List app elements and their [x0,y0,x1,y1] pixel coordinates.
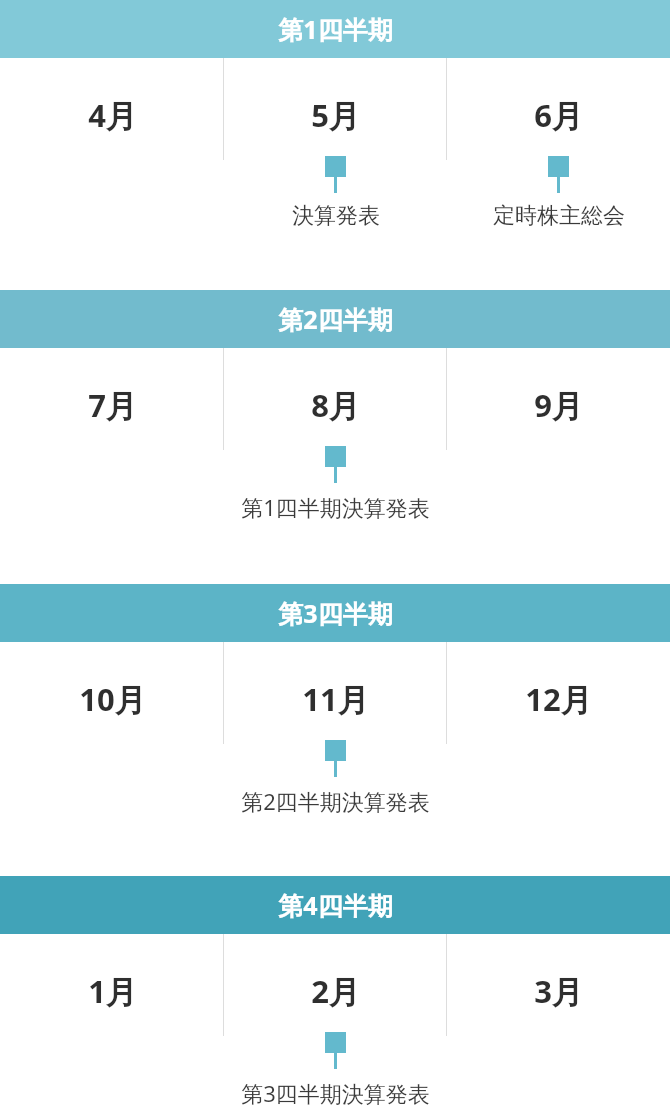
button[interactable]: 7月 [0,348,224,426]
button[interactable]: 1月 [0,934,224,1012]
staticText: 6月 [534,94,583,136]
button[interactable]: 第1四半期 [0,0,670,58]
button[interactable]: 第2四半期 [0,290,670,348]
button[interactable]: 第3四半期 [0,584,670,642]
staticText: 4月 [88,94,137,136]
button[interactable]: 4月 [0,58,224,136]
staticText: 第1四半期 [278,12,393,46]
staticText: 第3四半期決算発表 [241,1078,430,1108]
staticText: 第2四半期決算発表 [241,786,430,816]
staticText: 1月 [88,970,137,1012]
staticText: 9月 [534,384,583,426]
button[interactable]: 3月 [447,934,670,1012]
staticText: 7月 [88,384,137,426]
staticText: 10月 [79,678,146,720]
button[interactable]: 2月 [224,934,447,1108]
staticText: 第3四半期 [278,596,393,630]
staticText: 第4四半期 [278,888,393,922]
button[interactable]: 10月 [0,642,224,720]
staticText: 決算発表 [292,202,380,230]
staticText: 12月 [525,678,592,720]
staticText: 5月 [311,94,360,136]
button[interactable]: 8月 [224,348,447,522]
staticText: 2月 [311,970,360,1012]
button[interactable]: 9月 [447,348,670,426]
staticText: 3月 [534,970,583,1012]
button[interactable]: 6月 [447,58,670,230]
staticText: 11月 [302,678,369,720]
staticText: 8月 [311,384,360,426]
button[interactable]: 12月 [447,642,670,720]
button[interactable]: 11月 [224,642,447,816]
button[interactable]: 5月 [224,58,447,230]
button[interactable]: 第4四半期 [0,876,670,934]
staticText: 定時株主総会 [493,202,625,230]
staticText: 第1四半期決算発表 [241,492,430,522]
staticText: 第2四半期 [278,302,393,336]
